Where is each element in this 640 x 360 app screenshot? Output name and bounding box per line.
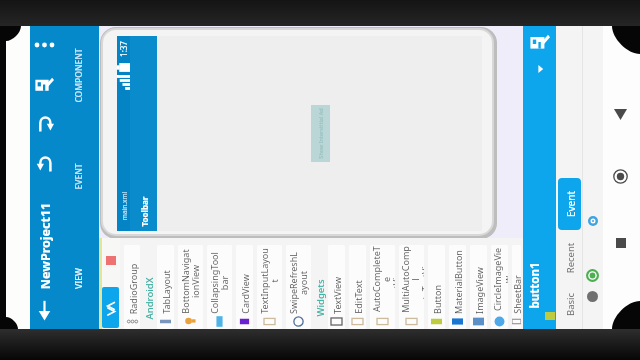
staticText: BottomNavigat ionView <box>179 249 202 314</box>
button[interactable]: More options <box>30 26 59 64</box>
staticText: COMPONENT <box>73 48 85 103</box>
button[interactable]: TextInputLayou t <box>257 245 282 329</box>
button[interactable]: Basic <box>558 288 581 320</box>
staticText: AutoCompleteTe xtView <box>370 245 395 314</box>
staticText: Basic <box>563 292 576 316</box>
staticText: Widgets <box>313 279 326 316</box>
button[interactable]: Home <box>601 163 640 189</box>
button[interactable]: TabLayout <box>157 245 174 329</box>
staticText: 1:37 <box>118 41 129 57</box>
button[interactable]: Event <box>558 178 581 230</box>
button[interactable]: EVENT <box>59 126 99 228</box>
button[interactable]: Design view <box>523 27 556 57</box>
button[interactable]: Source code <box>102 287 119 328</box>
button[interactable]: button1 <box>523 243 556 327</box>
staticText: RadioGroup <box>126 263 138 314</box>
staticText: AndroidX <box>142 277 155 319</box>
button[interactable]: RadioGroup <box>124 245 140 329</box>
button[interactable]: Design <box>30 64 59 104</box>
button[interactable]: Recents <box>601 230 640 256</box>
button[interactable]: CollapsingTool bar <box>207 245 232 329</box>
button[interactable]: TextView <box>328 245 345 329</box>
staticText: MultiAutoCompl eteTextView <box>399 245 424 314</box>
staticText: VIEW <box>73 268 85 289</box>
staticText: SwipeRefreshL ayout <box>287 252 310 314</box>
staticText: MaterialButton <box>452 250 464 314</box>
staticText: SheetBar <box>512 275 521 314</box>
staticText: CardView <box>239 274 251 314</box>
button[interactable]: AutoCompleteTe xtView <box>370 245 395 329</box>
staticText: main.xml <box>119 191 128 220</box>
button[interactable]: COMPONENT <box>59 26 99 126</box>
button[interactable]: SwipeRefreshL ayout <box>286 245 311 329</box>
staticText: Event <box>563 190 577 217</box>
button[interactable]: EditText <box>349 245 366 329</box>
button[interactable]: MaterialButton <box>449 245 466 329</box>
button[interactable]: Back <box>601 101 640 127</box>
staticText: EditText <box>352 280 364 314</box>
staticText: CollapsingTool bar <box>208 252 231 314</box>
staticText: Recent <box>563 242 576 273</box>
button[interactable]: VIEW <box>59 228 99 329</box>
button[interactable]: SheetBar <box>512 245 521 329</box>
staticText: Toolbar <box>138 196 149 226</box>
button[interactable]: Run <box>523 57 556 81</box>
button[interactable]: Back <box>30 292 59 329</box>
button[interactable]: CircleImageView <box>491 245 508 329</box>
staticText: Show Interstitial Ad <box>317 108 324 159</box>
staticText: CircleImageView <box>491 245 508 314</box>
button[interactable]: MultiAutoCompl eteTextView <box>399 245 424 329</box>
staticText: button1 <box>526 262 542 308</box>
button[interactable]: BottomNavigat ionView <box>178 245 203 329</box>
button[interactable]: CardView <box>236 245 253 329</box>
staticText: TextInputLayou t <box>258 248 281 314</box>
staticText: NewProject11 <box>36 202 53 289</box>
staticText: ImageView <box>473 267 485 314</box>
staticText: EVENT <box>73 163 85 190</box>
button[interactable]: Show Interstitial Ad <box>311 105 330 162</box>
button[interactable]: Button <box>428 245 445 329</box>
button[interactable]: Redo <box>30 104 59 144</box>
button[interactable]: Recent <box>558 241 581 275</box>
button[interactable]: Undo <box>30 144 59 184</box>
staticText: TextView <box>331 277 343 314</box>
staticText: Button <box>431 285 443 314</box>
button[interactable]: ImageView <box>470 245 487 329</box>
staticText: TabLayout <box>160 270 172 314</box>
